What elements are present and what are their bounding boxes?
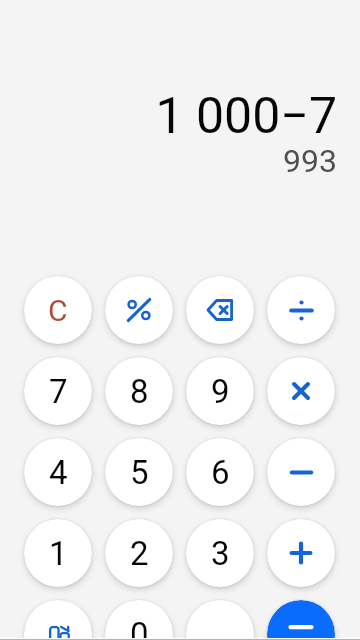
button[interactable]: 2 xyxy=(105,519,173,587)
button[interactable]: Minus xyxy=(267,438,335,506)
staticText: 3 xyxy=(211,534,230,573)
staticText: 2 xyxy=(130,534,149,573)
staticText: 0 xyxy=(130,615,149,640)
staticText: 9 xyxy=(211,372,230,411)
button[interactable]: Equals xyxy=(267,600,335,640)
button[interactable]: 4 xyxy=(24,438,92,506)
button[interactable]: 6 xyxy=(186,438,254,506)
staticText: C xyxy=(48,293,68,328)
staticText: 5 xyxy=(130,453,149,492)
staticText: 8 xyxy=(130,372,149,411)
button[interactable]: 3 xyxy=(186,519,254,587)
button[interactable]: 1 xyxy=(24,519,92,587)
staticText: 1 000−7 xyxy=(0,87,337,146)
button[interactable]: 9 xyxy=(186,357,254,425)
staticText: 4 xyxy=(49,453,68,492)
button[interactable]: Unit converter xyxy=(24,600,92,640)
staticText: 7 xyxy=(49,372,68,411)
staticText: . xyxy=(216,615,225,640)
button[interactable]: Percent xyxy=(105,276,173,344)
staticText: 6 xyxy=(211,453,230,492)
button[interactable]: Multiply xyxy=(267,357,335,425)
button[interactable]: 8 xyxy=(105,357,173,425)
staticText: 993 xyxy=(0,142,337,180)
button[interactable]: Backspace xyxy=(186,276,254,344)
button[interactable]: 7 xyxy=(24,357,92,425)
button[interactable]: . xyxy=(186,600,254,640)
button[interactable]: 5 xyxy=(105,438,173,506)
button[interactable]: Plus xyxy=(267,519,335,587)
staticText: 1 xyxy=(49,534,68,573)
button[interactable]: Clear xyxy=(24,276,92,344)
button[interactable]: 0 xyxy=(105,600,173,640)
button[interactable]: Divide xyxy=(267,276,335,344)
